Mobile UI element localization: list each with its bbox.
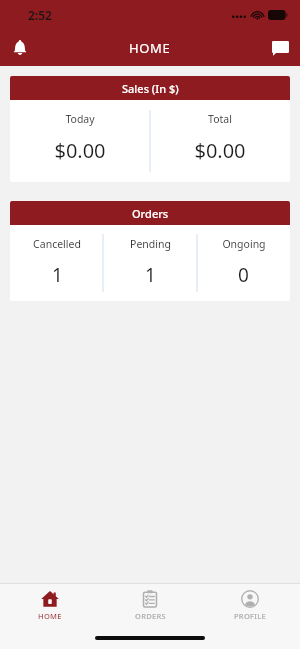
staticText: 1 bbox=[145, 262, 156, 288]
staticText: $0.00 bbox=[54, 137, 106, 164]
staticText: HOME bbox=[38, 611, 62, 621]
button[interactable]: Today bbox=[10, 100, 150, 182]
staticText: $0.00 bbox=[194, 137, 246, 164]
button[interactable]: Cancelled bbox=[10, 225, 104, 301]
staticText: 1 bbox=[52, 262, 63, 288]
button[interactable]: Messages bbox=[260, 30, 300, 66]
button[interactable]: Pending bbox=[104, 225, 197, 301]
staticText: Sales (In $) bbox=[122, 81, 179, 96]
staticText: 0 bbox=[238, 262, 249, 288]
staticText: Ongoing bbox=[222, 237, 266, 251]
button[interactable]: Total bbox=[150, 100, 290, 182]
staticText: Today bbox=[65, 112, 95, 126]
button[interactable]: ORDERS bbox=[100, 584, 200, 627]
staticText: PROFILE bbox=[234, 611, 267, 621]
staticText: HOME bbox=[129, 39, 171, 57]
button[interactable]: PROFILE bbox=[200, 584, 300, 627]
staticText: Cancelled bbox=[33, 237, 81, 251]
button[interactable]: HOME bbox=[0, 584, 100, 627]
staticText: Pending bbox=[130, 237, 171, 251]
button[interactable]: Ongoing bbox=[197, 225, 290, 301]
staticText: 2:52 bbox=[28, 7, 52, 23]
staticText: Total bbox=[208, 112, 232, 126]
button[interactable]: Notifications bbox=[0, 30, 40, 66]
staticText: Orders bbox=[132, 206, 169, 221]
staticText: ORDERS bbox=[135, 611, 166, 621]
